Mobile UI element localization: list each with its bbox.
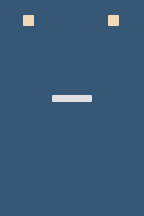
button[interactable]: Right control bbox=[108, 15, 119, 26]
button[interactable]: Left control bbox=[23, 15, 34, 26]
